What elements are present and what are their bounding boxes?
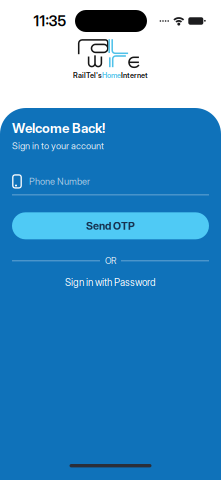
staticText: Welcome Back! <box>12 120 105 136</box>
staticText: Internet <box>121 71 148 80</box>
button[interactable]: Send OTP <box>12 212 209 239</box>
button[interactable]: Sign in with Password <box>12 276 209 288</box>
staticText: Sign in to your account <box>12 140 104 151</box>
staticText: Send OTP <box>86 219 135 232</box>
staticText: RailTel's <box>73 71 102 80</box>
staticText: OR <box>105 256 116 266</box>
staticText: Home <box>102 71 121 80</box>
staticText: Sign in with Password <box>65 276 156 288</box>
staticText: Phone Number <box>29 176 90 187</box>
staticText: 11:35 <box>33 12 66 30</box>
